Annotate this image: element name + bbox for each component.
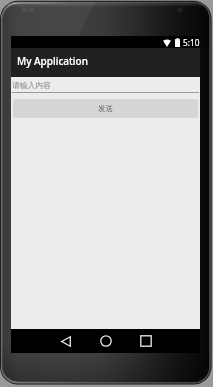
staticText: 发送 xyxy=(98,104,113,113)
button[interactable]: 请输入内容 xyxy=(12,77,199,93)
button[interactable]: Recent apps xyxy=(126,329,166,353)
staticText: 5:10 xyxy=(183,37,200,48)
staticText: 请输入内容 xyxy=(12,80,51,90)
staticText: My Application xyxy=(17,54,88,68)
button[interactable]: Back xyxy=(46,329,86,353)
button[interactable]: 发送 xyxy=(13,99,198,118)
button[interactable]: Home xyxy=(86,329,126,353)
